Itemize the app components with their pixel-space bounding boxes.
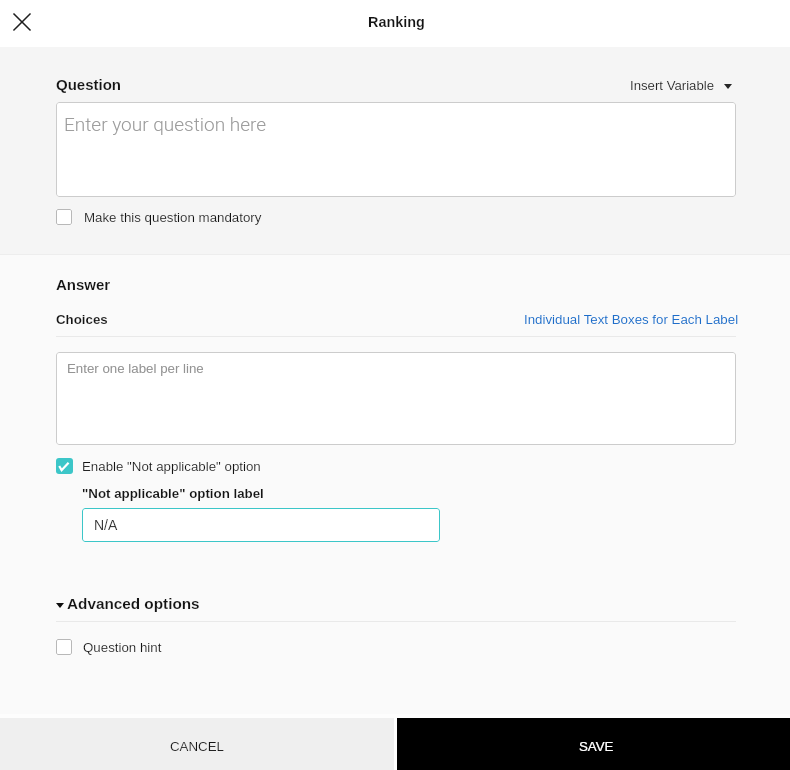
button[interactable]: N/A — [82, 508, 440, 542]
button[interactable]: Question text field — [56, 102, 736, 197]
button[interactable]: SAVE — [397, 718, 790, 770]
button[interactable]: Choice labels text field — [56, 352, 736, 445]
button[interactable]: Enable "Not applicable" option — [56, 458, 261, 474]
button[interactable]: Advanced options — [56, 595, 200, 612]
button[interactable]: Make this question mandatory — [56, 209, 262, 225]
button[interactable]: Individual Text Boxes for Each Label — [524, 312, 739, 327]
button[interactable]: Close — [4, 4, 40, 40]
button[interactable]: Insert Variable — [630, 78, 732, 93]
staticText: SAVE — [579, 739, 614, 754]
staticText: Make this question mandatory — [84, 210, 262, 225]
staticText: Question hint — [83, 640, 162, 655]
staticText: Answer — [56, 276, 111, 293]
staticText: Enable "Not applicable" option — [82, 459, 261, 474]
staticText: N/A — [94, 517, 118, 533]
staticText: Enter one label per line — [67, 361, 204, 376]
button[interactable]: CANCEL — [0, 718, 394, 770]
staticText: Insert Variable — [630, 78, 715, 93]
staticText: CANCEL — [170, 739, 224, 754]
staticText: Question — [56, 76, 122, 93]
staticText: "Not applicable" option label — [82, 486, 264, 501]
staticText: Choices — [56, 312, 108, 327]
staticText: Advanced options — [67, 595, 200, 612]
staticText: Ranking — [368, 14, 425, 30]
staticText: Enter your question here — [64, 113, 267, 135]
button[interactable]: Question hint — [56, 639, 162, 655]
